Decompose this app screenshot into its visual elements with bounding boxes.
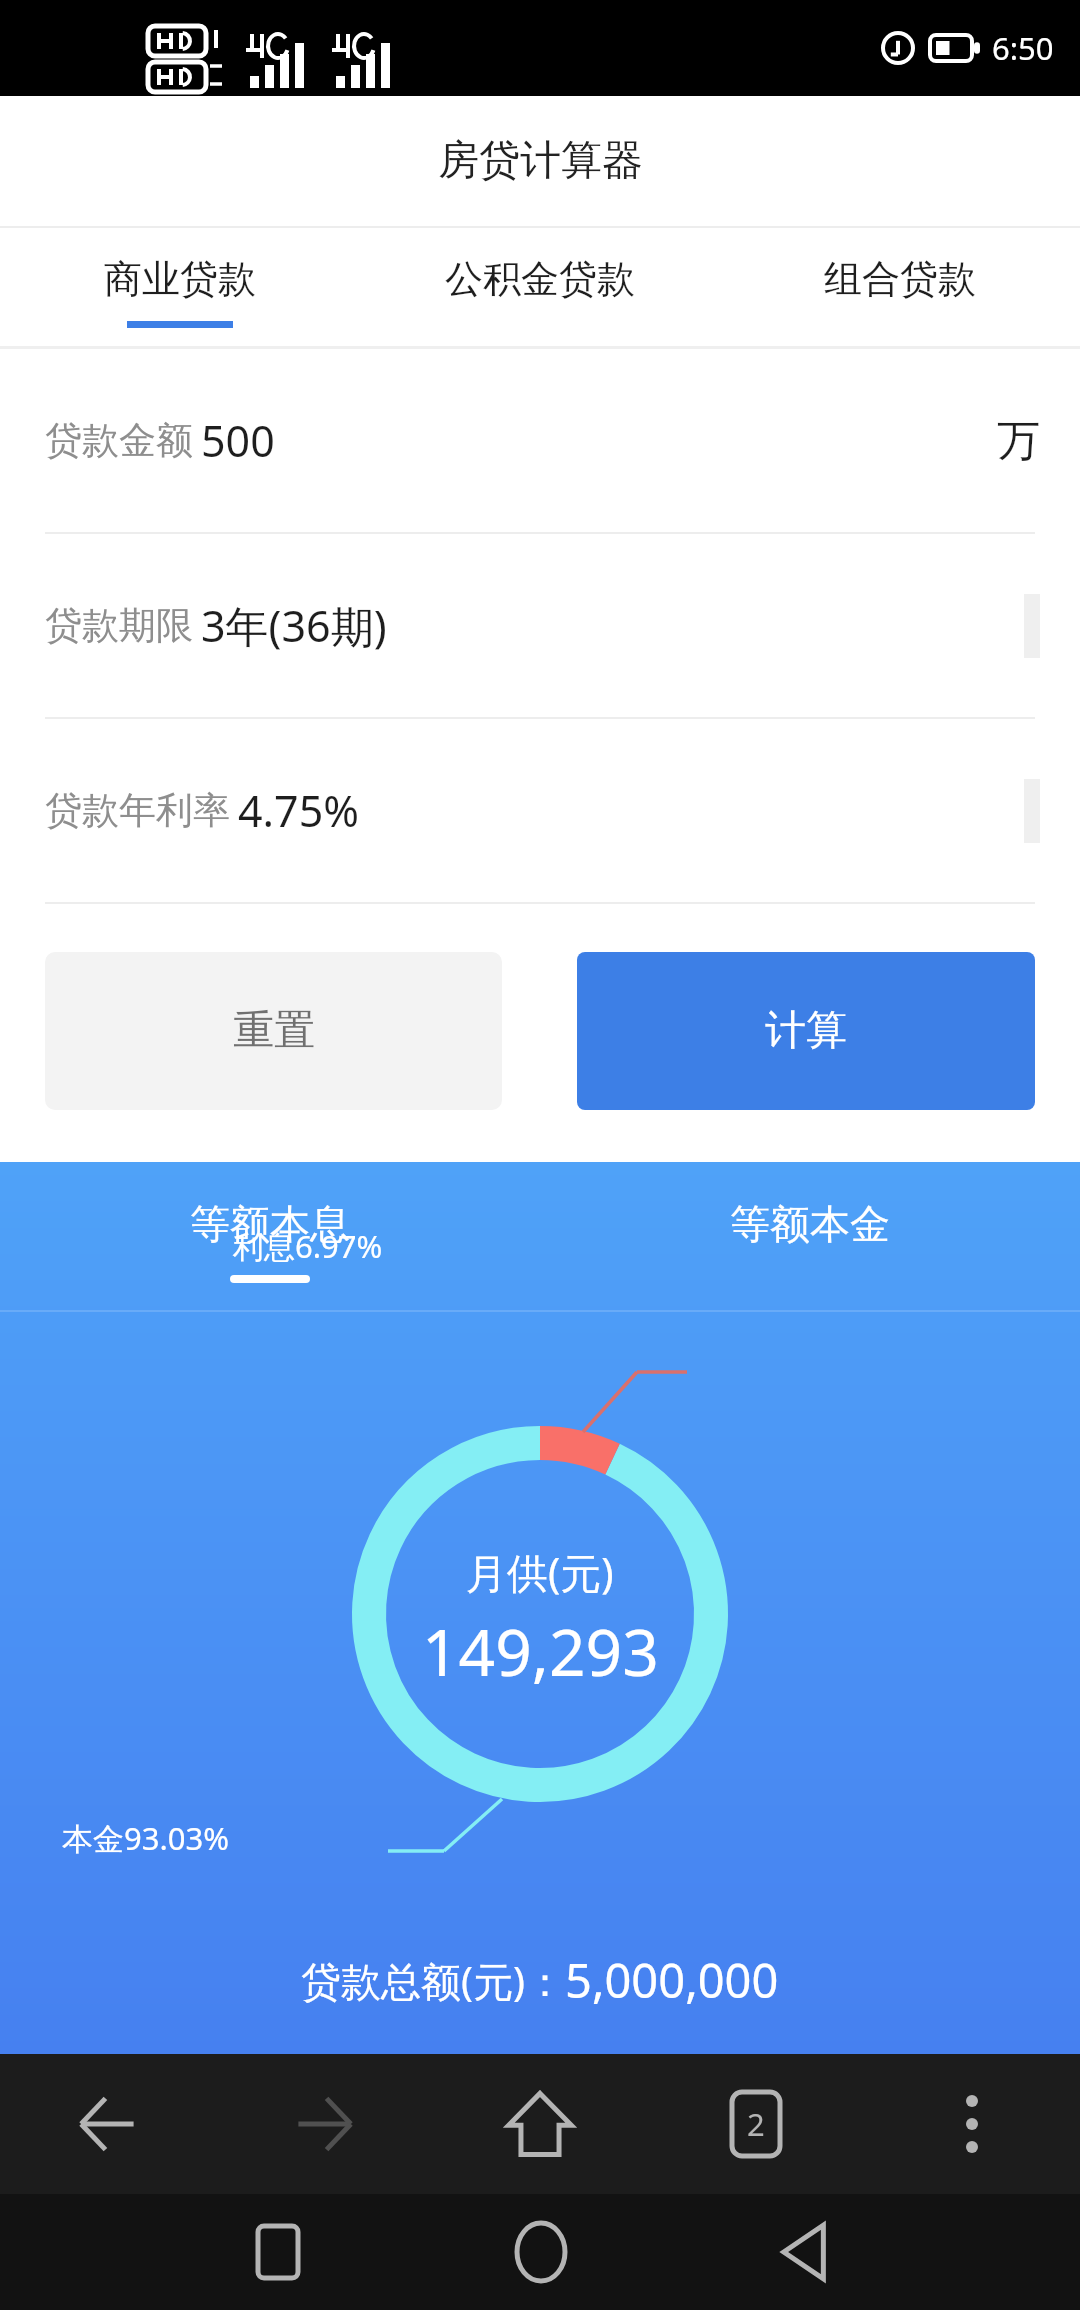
staticText: 组合贷款: [824, 255, 976, 303]
staticText: 5,000,000: [565, 1948, 779, 2012]
button[interactable]: Menu: [864, 2054, 1080, 2194]
button[interactable]: 等额本息: [0, 1162, 540, 1310]
staticText: 重置: [233, 1005, 315, 1057]
button[interactable]: 贷款年利率: [0, 719, 1080, 904]
button[interactable]: Forward: [216, 2054, 432, 2194]
staticText: 贷款金额: [45, 417, 193, 464]
staticText: 3年(36期): [201, 596, 387, 655]
staticText: 6:50: [992, 27, 1054, 69]
staticText: 贷款年利率: [45, 787, 230, 834]
button[interactable]: Back: [672, 2194, 935, 2310]
button[interactable]: 重置: [45, 952, 502, 1110]
staticText: 商业贷款: [104, 255, 256, 303]
button[interactable]: Recents: [146, 2194, 409, 2310]
button[interactable]: Home: [409, 2194, 672, 2310]
button[interactable]: 贷款期限: [0, 534, 1080, 719]
button[interactable]: 等额本金: [540, 1162, 1080, 1310]
staticText: 149,293: [422, 1608, 659, 1695]
button[interactable]: 公积金贷款: [360, 228, 720, 346]
button[interactable]: Home: [432, 2054, 648, 2194]
button[interactable]: 贷款金额: [0, 349, 1080, 534]
button[interactable]: Back: [0, 2054, 216, 2194]
staticText: 500: [201, 411, 275, 470]
staticText: 本金93.03%: [62, 1817, 229, 1859]
staticText: 等额本息: [190, 1199, 350, 1249]
staticText: 贷款期限: [45, 602, 193, 649]
staticText: 月供(元): [466, 1544, 614, 1600]
button[interactable]: Tabs: [648, 2054, 864, 2194]
staticText: 2: [747, 2103, 765, 2145]
staticText: 贷款总额(元)：: [301, 1953, 565, 2008]
staticText: 房贷计算器: [438, 135, 643, 187]
button[interactable]: 计算: [577, 952, 1035, 1110]
staticText: 4.75%: [238, 781, 360, 840]
button[interactable]: 组合贷款: [720, 228, 1080, 346]
staticText: 万: [997, 414, 1040, 468]
button[interactable]: 商业贷款: [0, 228, 360, 346]
staticText: 计算: [765, 1005, 847, 1057]
staticText: 等额本金: [730, 1199, 890, 1249]
staticText: 利息6.97%: [233, 1225, 383, 1267]
staticText: 公积金贷款: [445, 255, 635, 303]
